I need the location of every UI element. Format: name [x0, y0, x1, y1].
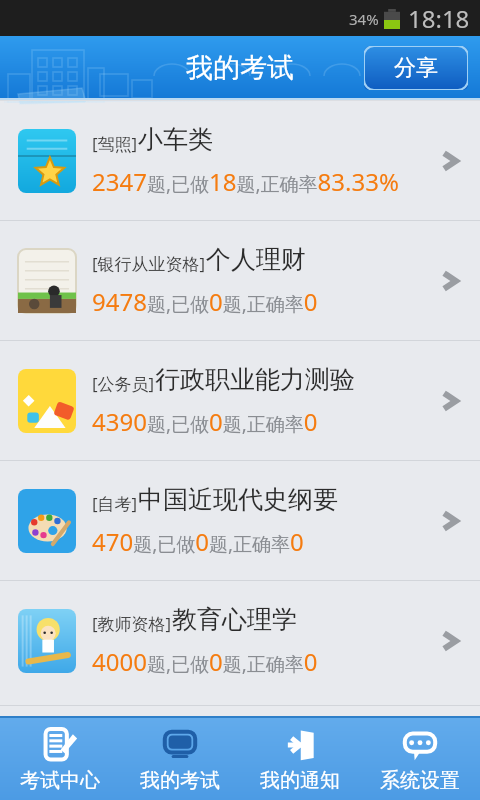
staticText: 4390题,已做0题,正确率0 [92, 405, 318, 438]
staticText: [教师资格] [92, 612, 172, 635]
button[interactable]: [自考] [0, 461, 480, 580]
staticText: 2347题,已做18题,正确率83.33% [92, 165, 399, 198]
staticText: 18:18 [408, 2, 470, 35]
staticText: 中国近现代史纲要 [138, 484, 338, 515]
staticText: [银行从业资格] [92, 252, 206, 275]
staticText: 34% [349, 9, 379, 29]
staticText: 系统设置 [380, 768, 460, 793]
button[interactable]: 分享 [364, 46, 468, 90]
staticText: [自考] [92, 492, 138, 515]
staticText: [驾照] [92, 132, 138, 155]
staticText: 4000题,已做0题,正确率0 [92, 645, 318, 678]
staticText: 教育心理学 [172, 604, 297, 635]
button[interactable]: [银行从业资格] [0, 221, 480, 340]
staticText: 行政职业能力测验 [155, 364, 355, 395]
staticText: [公务员] [92, 372, 155, 395]
staticText: 470题,已做0题,正确率0 [92, 525, 304, 558]
button[interactable]: 系统设置 [360, 718, 480, 800]
staticText: 我的考试 [186, 51, 294, 85]
staticText: 我的通知 [260, 768, 340, 793]
button[interactable]: [公务员] [0, 341, 480, 460]
staticText: 考试中心 [20, 768, 100, 793]
button[interactable]: [驾照] [0, 101, 480, 220]
staticText: 我的考试 [140, 768, 220, 793]
button[interactable]: 我的通知 [240, 718, 360, 800]
staticText: 分享 [394, 54, 438, 82]
button[interactable]: [教师资格] [0, 581, 480, 700]
staticText: 小车类 [138, 124, 213, 155]
staticText: 9478题,已做0题,正确率0 [92, 285, 318, 318]
button[interactable]: 考试中心 [0, 718, 120, 800]
staticText: 个人理财 [206, 244, 306, 275]
button[interactable]: 我的考试 [120, 718, 240, 800]
